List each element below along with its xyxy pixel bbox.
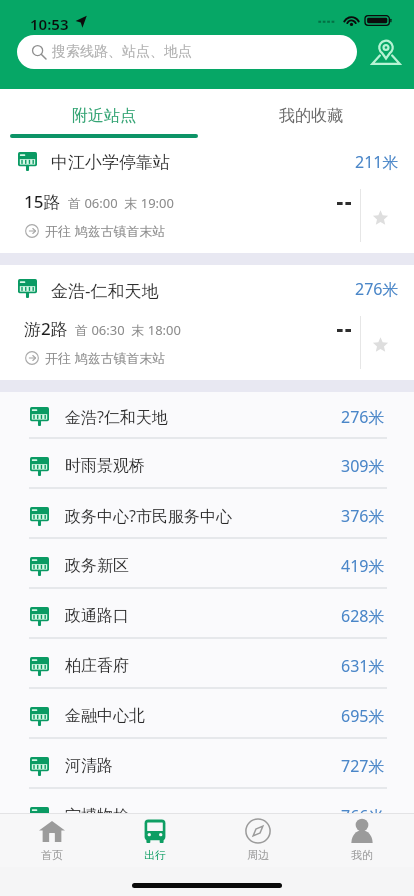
staticText: 附近站点 — [72, 106, 136, 126]
button[interactable]: 搜索线路、站点、地点 — [17, 35, 357, 69]
staticText: 276米 — [341, 406, 385, 428]
staticText: 政务新区 — [65, 556, 129, 576]
staticText: 时雨景观桥 — [65, 456, 145, 476]
button[interactable]: 出行 — [103, 814, 206, 867]
staticText: 宁博物检 — [65, 806, 129, 826]
staticText: 766米 — [341, 805, 385, 827]
button[interactable]: 中江小学停靠站 — [0, 138, 414, 253]
button[interactable]: 金浩?仁和天地 — [0, 392, 414, 439]
staticText: 政务中心?市民服务中心 — [65, 505, 232, 527]
staticText: 376米 — [341, 505, 385, 527]
staticText: 金浩-仁和天地 — [51, 279, 159, 299]
staticText: 我的 — [351, 848, 373, 862]
button[interactable]: 政务中心?市民服务中心 — [0, 489, 414, 539]
staticText: 首 06:00 末 19:00 — [68, 194, 174, 212]
button[interactable]: 金浩-仁和天地 — [0, 265, 414, 380]
staticText: 10:53 — [30, 14, 69, 34]
staticText: 金浩?仁和天地 — [65, 406, 168, 428]
staticText: 419米 — [341, 555, 385, 577]
staticText: 309米 — [341, 455, 385, 477]
staticText: 开往 鸠兹古镇首末站 — [45, 349, 166, 367]
button[interactable]: 附近站点 — [0, 89, 207, 138]
staticText: 首 06:30 末 18:00 — [75, 321, 181, 339]
button[interactable]: 我的 — [310, 814, 414, 867]
staticText: 首页 — [41, 848, 63, 862]
staticText: 柏庄香府 — [65, 656, 129, 676]
staticText: 游2路 — [24, 317, 68, 340]
button[interactable]: 我的收藏 — [207, 89, 414, 138]
staticText: 金融中心北 — [65, 706, 145, 726]
button[interactable]: 政通路口 — [0, 589, 414, 639]
staticText: 695米 — [341, 705, 385, 727]
button[interactable]: 金融中心北 — [0, 689, 414, 739]
staticText: 211米 — [355, 151, 399, 171]
button[interactable]: 柏庄香府 — [0, 639, 414, 689]
staticText: 出行 — [144, 848, 166, 862]
staticText: 我的收藏 — [279, 106, 343, 126]
staticText: 15路 — [24, 190, 61, 213]
staticText: 628米 — [341, 605, 385, 627]
button[interactable]: Favourite — [361, 189, 414, 242]
staticText: 开往 鸠兹古镇首末站 — [45, 222, 166, 240]
staticText: 河清路 — [65, 756, 113, 776]
staticText: 周边 — [247, 848, 269, 862]
button[interactable]: 时雨景观桥 — [0, 439, 414, 489]
button[interactable]: 政务新区 — [0, 539, 414, 589]
staticText: 搜索线路、站点、地点 — [52, 43, 192, 61]
staticText: 727米 — [341, 755, 385, 777]
staticText: 631米 — [341, 655, 385, 677]
button[interactable]: Favourite — [361, 316, 414, 369]
staticText: 政通路口 — [65, 606, 129, 626]
button[interactable]: 河清路 — [0, 739, 414, 789]
button[interactable]: 宁博物检 — [0, 789, 414, 839]
button[interactable]: 首页 — [0, 814, 103, 867]
staticText: 276米 — [355, 278, 399, 298]
staticText: 中江小学停靠站 — [51, 152, 170, 172]
button[interactable]: Map — [364, 34, 408, 70]
button[interactable]: 周边 — [206, 814, 310, 867]
